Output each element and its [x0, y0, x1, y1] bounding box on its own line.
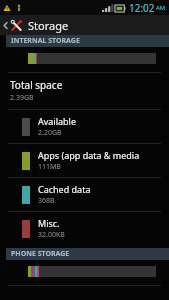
button[interactable]: Available	[0, 110, 169, 143]
staticText: Misc.	[38, 217, 60, 229]
staticText: PHONE STORAGE	[11, 249, 70, 259]
staticText: 368B	[38, 196, 55, 206]
button[interactable]: Misc.	[0, 212, 169, 245]
staticText: Apps (app data & media conte	[38, 149, 165, 161]
staticText: Storage	[28, 18, 69, 33]
staticText: AM	[156, 4, 166, 12]
staticText: 32.00KB	[38, 230, 65, 240]
staticText: 12:02	[129, 1, 155, 15]
button[interactable]: Total space	[0, 73, 169, 109]
button[interactable]: Navigate up, Storage	[0, 15, 169, 35]
button[interactable]: Apps (app data & media conte	[0, 144, 169, 177]
button[interactable]: Cached data	[0, 178, 169, 211]
staticText: INTERNAL STORAGE	[11, 36, 80, 46]
staticText: 111MB	[38, 162, 61, 172]
staticText: Total space	[10, 78, 63, 92]
staticText: 2.39GB	[10, 93, 34, 103]
staticText: Cached data	[38, 183, 91, 195]
staticText: 2.20GB	[38, 128, 62, 138]
staticText: Available	[38, 115, 76, 127]
